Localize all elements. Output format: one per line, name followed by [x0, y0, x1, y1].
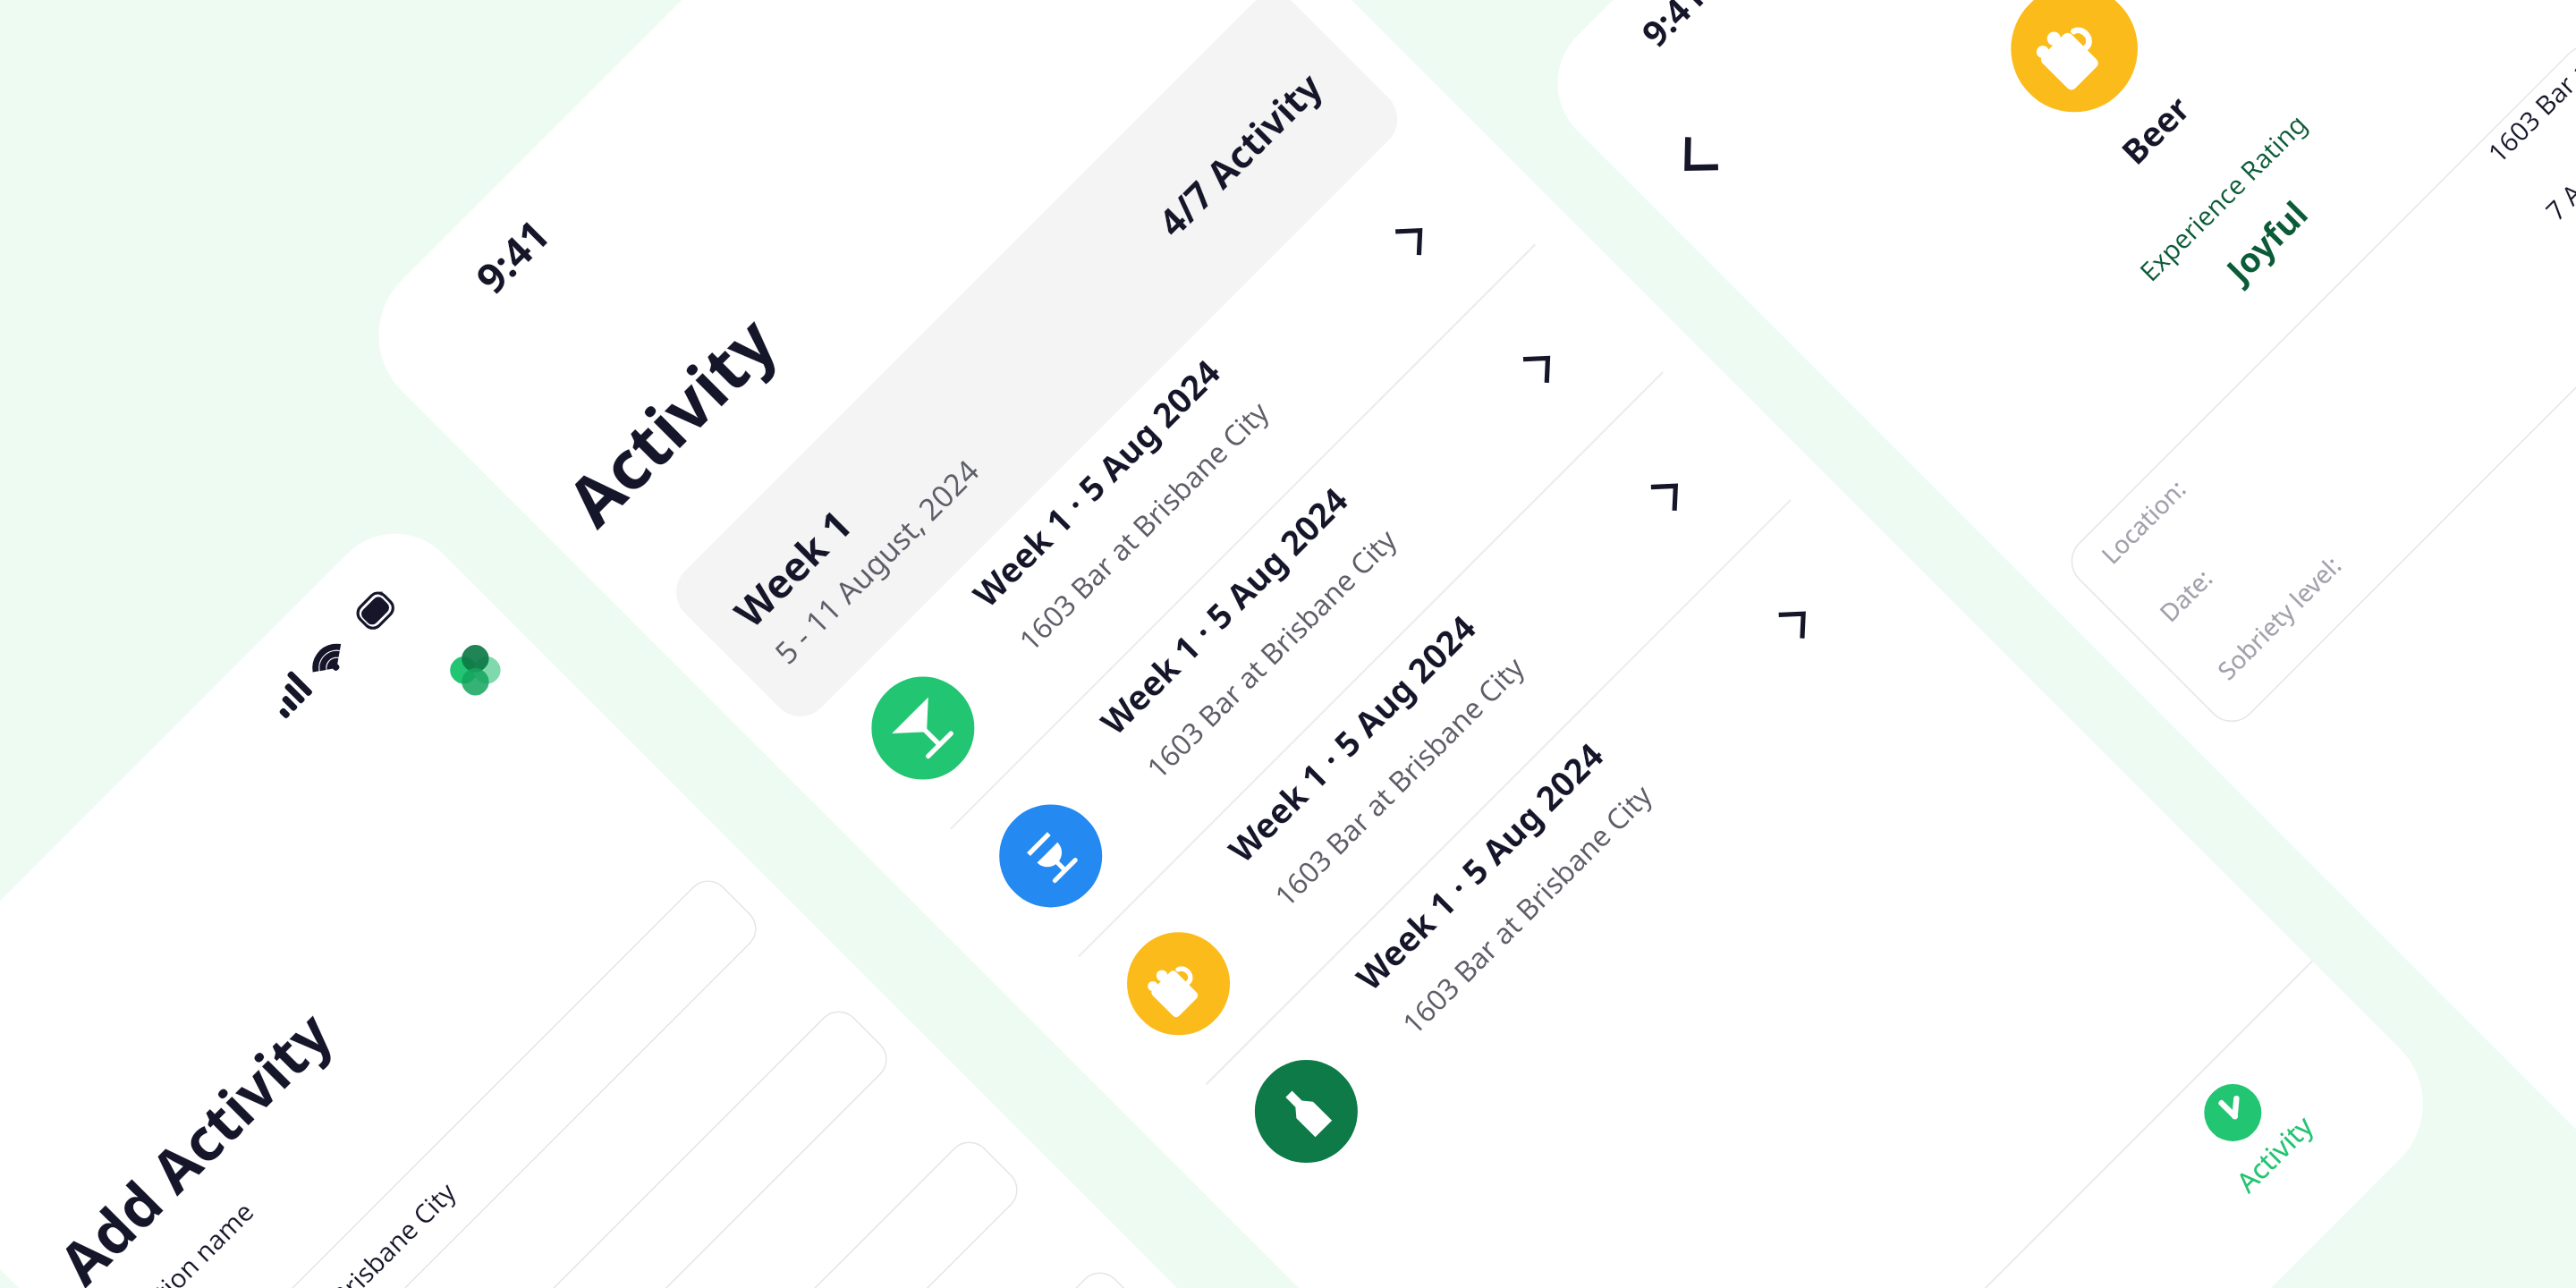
staticText: Location name	[106, 1194, 261, 1288]
staticText: 1603 Bar at Brisbane City	[1138, 520, 1405, 787]
staticText: 1603 Bar at Brisbane City	[1266, 648, 1533, 915]
staticText: 9:41	[463, 207, 561, 305]
staticText: Week 1 · 5 Aug 2024	[962, 349, 1230, 616]
staticText: 7 Aug 2024	[2538, 105, 2576, 228]
button[interactable]: Week 1 · 5 Aug 2024	[1053, 371, 1790, 1109]
staticText: 5 - 11 August, 2024	[765, 451, 987, 673]
staticText: Beer	[2111, 85, 2199, 174]
staticText: Sobriety level:	[2210, 548, 2349, 687]
button[interactable]: Activity	[2175, 1055, 2325, 1205]
button[interactable]: Week 1 · 5 Aug 2024	[925, 244, 1662, 981]
staticText: Date:	[2152, 561, 2220, 629]
button[interactable]: Week 1 · 5 Aug 2024	[1180, 499, 1918, 1237]
button[interactable]: Back	[1655, 121, 1734, 200]
button[interactable]: Tipsy	[442, 1133, 1027, 1288]
staticText: 1603 Bar at Brisbane City	[1010, 392, 1277, 659]
staticText: Joyful	[2216, 190, 2317, 292]
staticText: Add Activity	[41, 994, 349, 1288]
staticText: Week 1 · 5 Aug 2024	[1218, 604, 1485, 872]
staticText: Activity	[546, 296, 796, 545]
button[interactable]: Week 1 · 5 Aug 2024	[797, 116, 1535, 853]
button[interactable]: Week 1	[664, 0, 1410, 729]
staticText: 1603 Bar at Brisbane City	[1394, 776, 1660, 1042]
button[interactable]: 7 Aug 2024	[312, 1002, 896, 1288]
staticText: 1603 Bar at Brisbane City	[219, 1175, 463, 1288]
staticText: 1603 Bar at Brisbane City	[2480, 36, 2576, 170]
staticText: Week 1	[722, 497, 863, 638]
button[interactable]: 1603 Bar at Brisbane City	[181, 871, 765, 1288]
staticText: Location:	[2094, 472, 2193, 571]
staticText: 4/7 Activity	[1146, 61, 1332, 247]
staticText: Week 1 · 5 Aug 2024	[1090, 476, 1357, 744]
staticText: Week 1 · 5 Aug 2024	[1345, 732, 1613, 1000]
staticText: Activity	[2228, 1107, 2321, 1200]
staticText: Experience Rating	[2132, 106, 2314, 289]
staticText: 9:41	[1631, 0, 1715, 57]
